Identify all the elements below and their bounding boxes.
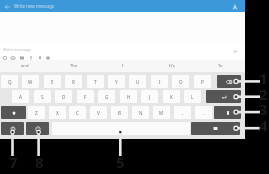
staticText: V xyxy=(97,110,100,116)
button[interactable]: H xyxy=(120,90,137,103)
staticText: K xyxy=(170,94,173,100)
button[interactable]: F xyxy=(77,90,94,103)
button[interactable]: Emoji xyxy=(26,122,49,135)
button[interactable]: Contact xyxy=(44,54,52,62)
staticText: X xyxy=(56,110,59,116)
button[interactable]: B xyxy=(111,106,128,119)
button[interactable]: Voice xyxy=(27,54,35,62)
staticText: C xyxy=(76,110,79,116)
staticText: E xyxy=(51,79,54,85)
button[interactable]: It's xyxy=(147,60,196,72)
staticText: J xyxy=(149,94,151,100)
staticText: Q xyxy=(8,79,12,85)
button[interactable]: J xyxy=(141,90,158,103)
button[interactable]: , xyxy=(174,106,191,119)
staticText: H xyxy=(127,94,131,100)
button[interactable]: Enter xyxy=(206,90,241,103)
staticText: N xyxy=(139,110,143,116)
staticText: W xyxy=(28,79,33,85)
staticText: I xyxy=(122,63,124,69)
button[interactable]: Send xyxy=(191,122,240,135)
staticText: and xyxy=(21,63,29,69)
staticText: P xyxy=(201,79,204,85)
button[interactable]: Z xyxy=(28,106,45,119)
button[interactable]: N xyxy=(132,106,149,119)
staticText: L xyxy=(191,94,194,100)
staticText: 7 xyxy=(9,152,18,172)
staticText: To xyxy=(218,63,223,69)
staticText: It's xyxy=(169,63,175,69)
button[interactable]: Delete xyxy=(214,106,241,119)
staticText: 3 xyxy=(259,99,268,119)
button[interactable]: Camera xyxy=(9,54,17,62)
staticText: I xyxy=(159,79,161,85)
staticText: . xyxy=(203,110,205,116)
staticText: M xyxy=(159,110,164,116)
button[interactable]: L xyxy=(184,90,201,103)
button[interactable]: W xyxy=(22,75,39,88)
button[interactable]: P xyxy=(194,75,211,88)
button[interactable]: C xyxy=(69,106,86,119)
staticText: Write message xyxy=(3,47,31,52)
button[interactable]: G xyxy=(98,90,115,103)
button[interactable]: Shift xyxy=(1,106,26,119)
button[interactable]: I xyxy=(98,60,147,72)
button[interactable]: Symbols xyxy=(1,122,24,135)
staticText: The xyxy=(70,63,78,69)
button[interactable]: S xyxy=(34,90,51,103)
button[interactable]: R xyxy=(65,75,82,88)
staticText: Z xyxy=(35,110,38,116)
staticText: Y xyxy=(115,79,118,85)
staticText: 4 xyxy=(259,115,268,135)
staticText: A xyxy=(19,94,22,100)
staticText: 1 xyxy=(259,68,268,88)
staticText: 5 xyxy=(116,152,125,172)
staticText: U xyxy=(136,79,140,85)
staticText: G xyxy=(105,94,109,100)
button[interactable]: M xyxy=(153,106,170,119)
staticText: , xyxy=(182,110,184,116)
staticText: 8 xyxy=(35,152,44,172)
button[interactable]: O xyxy=(172,75,189,88)
button[interactable]: Emoji xyxy=(1,54,9,62)
button[interactable]: K xyxy=(163,90,180,103)
staticText: B xyxy=(118,110,121,116)
button[interactable]: and xyxy=(0,60,49,72)
button[interactable]: X xyxy=(49,106,66,119)
staticText: D xyxy=(62,94,66,100)
button[interactable]: A xyxy=(12,90,29,103)
button[interactable]: Send message xyxy=(230,46,240,56)
button[interactable]: D xyxy=(55,90,72,103)
button[interactable]: Backspace xyxy=(217,75,241,88)
button[interactable]: T xyxy=(87,75,104,88)
staticText: 2 xyxy=(259,84,268,104)
button[interactable]: Add recipient xyxy=(229,1,240,12)
staticText: F xyxy=(84,94,87,100)
staticText: R xyxy=(72,79,75,85)
button[interactable]: Space xyxy=(52,122,190,135)
staticText: S xyxy=(41,94,44,100)
button[interactable]: The xyxy=(49,60,98,72)
button[interactable]: Location xyxy=(36,54,44,62)
button[interactable]: Back xyxy=(1,1,12,12)
staticText: T xyxy=(94,79,97,85)
button[interactable]: U xyxy=(129,75,146,88)
button[interactable]: Y xyxy=(108,75,125,88)
button[interactable]: E xyxy=(44,75,61,88)
staticText: O xyxy=(179,79,183,85)
button[interactable]: Gallery xyxy=(18,54,26,62)
button[interactable]: I xyxy=(151,75,168,88)
button[interactable]: V xyxy=(90,106,107,119)
staticText: Write new message xyxy=(14,3,55,9)
button[interactable]: To xyxy=(196,60,245,72)
button[interactable]: Q xyxy=(1,75,18,88)
